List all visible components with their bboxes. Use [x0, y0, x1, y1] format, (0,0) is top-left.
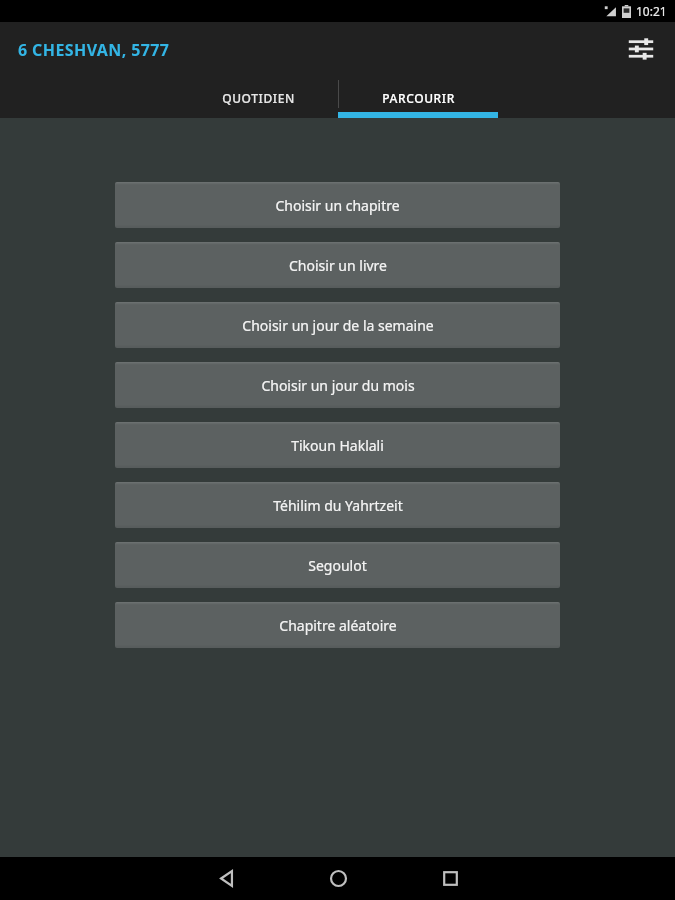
- staticText: QUOTIDIEN: [222, 90, 295, 106]
- button[interactable]: Choisir un chapitre: [115, 182, 560, 228]
- button[interactable]: QUOTIDIEN: [178, 78, 338, 118]
- button[interactable]: Choisir un livre: [115, 242, 560, 288]
- staticText: Choisir un jour de la semaine: [242, 316, 434, 335]
- staticText: Segoulot: [308, 556, 367, 575]
- button[interactable]: Home: [307, 857, 369, 900]
- staticText: 10:21: [636, 3, 667, 19]
- button[interactable]: Choisir un jour de la semaine: [115, 302, 560, 348]
- staticText: 6 CHESHVAN, 5777: [18, 39, 170, 61]
- staticText: Chapitre aléatoire: [279, 616, 397, 635]
- button[interactable]: Chapitre aléatoire: [115, 602, 560, 648]
- staticText: Téhilim du Yahrtzeit: [273, 496, 403, 515]
- button[interactable]: Back: [195, 857, 257, 900]
- button[interactable]: PARCOURIR: [338, 78, 498, 118]
- button[interactable]: Tikoun Haklali: [115, 422, 560, 468]
- button[interactable]: Settings: [619, 28, 663, 72]
- button[interactable]: Segoulot: [115, 542, 560, 588]
- staticText: Choisir un livre: [289, 256, 387, 275]
- staticText: PARCOURIR: [382, 90, 455, 106]
- staticText: Tikoun Haklali: [291, 436, 384, 455]
- button[interactable]: Recent apps: [419, 857, 481, 900]
- staticText: Choisir un chapitre: [275, 196, 400, 215]
- button[interactable]: Téhilim du Yahrtzeit: [115, 482, 560, 528]
- staticText: Choisir un jour du mois: [261, 376, 415, 395]
- button[interactable]: Choisir un jour du mois: [115, 362, 560, 408]
